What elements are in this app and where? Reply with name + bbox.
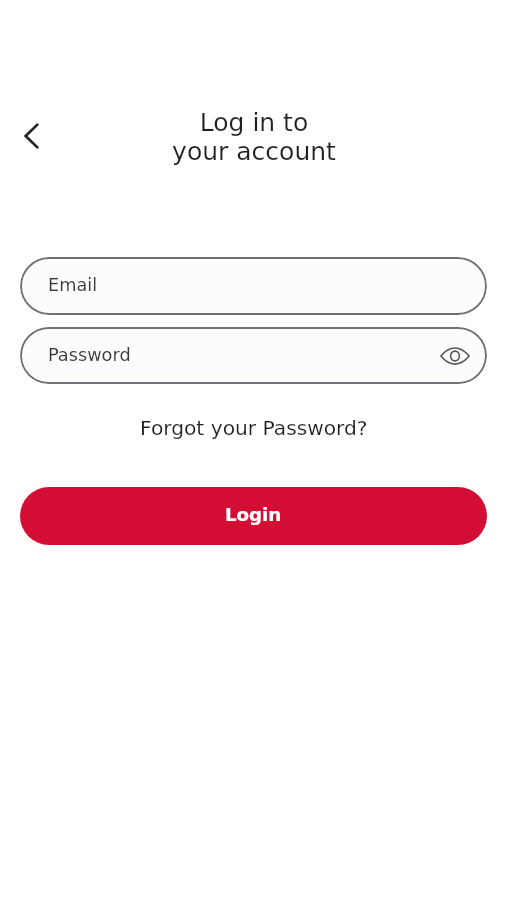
staticText: Log in to your account bbox=[94, 108, 414, 166]
staticText: Email bbox=[48, 275, 98, 296]
staticText: Login bbox=[225, 504, 282, 525]
button[interactable]: Show password bbox=[437, 338, 473, 374]
button[interactable]: Login bbox=[20, 487, 487, 545]
button[interactable]: Forgot your Password? bbox=[132, 412, 376, 444]
staticText: Password bbox=[48, 345, 131, 366]
button[interactable]: Password bbox=[20, 327, 487, 384]
button[interactable]: Back bbox=[9, 113, 54, 158]
button[interactable]: Email bbox=[20, 257, 487, 315]
